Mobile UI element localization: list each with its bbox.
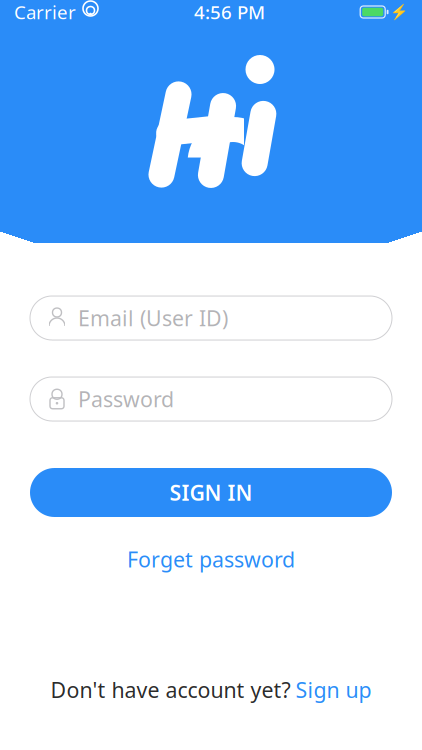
- staticText: ⚡: [390, 4, 408, 20]
- button[interactable]: SIGN IN: [30, 468, 392, 517]
- staticText: Carrier: [14, 0, 76, 24]
- staticText: Password: [78, 385, 174, 413]
- button[interactable]: Password: [30, 377, 392, 421]
- staticText: 4:56 PM: [194, 0, 265, 24]
- staticText: Don't have account yet?: [50, 676, 290, 704]
- button[interactable]: Forget password: [117, 539, 305, 579]
- button[interactable]: Email (User ID): [30, 296, 392, 340]
- staticText: SIGN IN: [169, 478, 252, 507]
- button[interactable]: Sign up: [295, 676, 371, 704]
- staticText: Sign up: [295, 676, 371, 704]
- staticText: Email (User ID): [78, 304, 228, 332]
- staticText: Forget password: [127, 545, 295, 573]
